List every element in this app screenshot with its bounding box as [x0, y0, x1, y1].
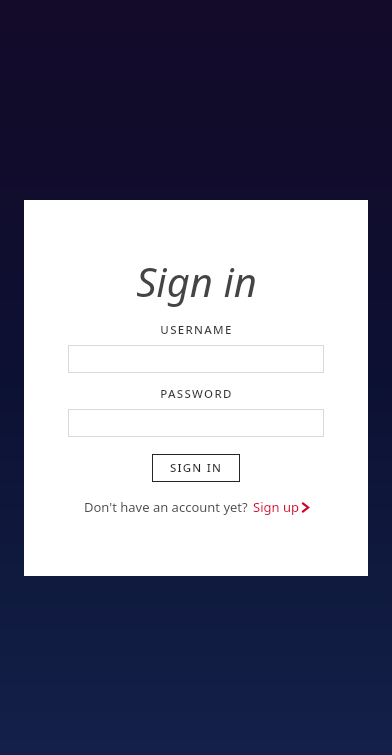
- staticText: Don't have an account yet?: [84, 498, 248, 516]
- button[interactable]: Text input: [68, 409, 324, 437]
- staticText: Sign up: [253, 498, 299, 516]
- staticText: USERNAME: [160, 322, 233, 338]
- button[interactable]: Text input: [68, 345, 324, 373]
- button[interactable]: SIGN IN: [152, 454, 240, 482]
- staticText: SIGN IN: [170, 460, 223, 476]
- staticText: Sign in: [136, 254, 257, 308]
- staticText: PASSWORD: [160, 386, 233, 402]
- button[interactable]: Sign up: [253, 498, 309, 516]
